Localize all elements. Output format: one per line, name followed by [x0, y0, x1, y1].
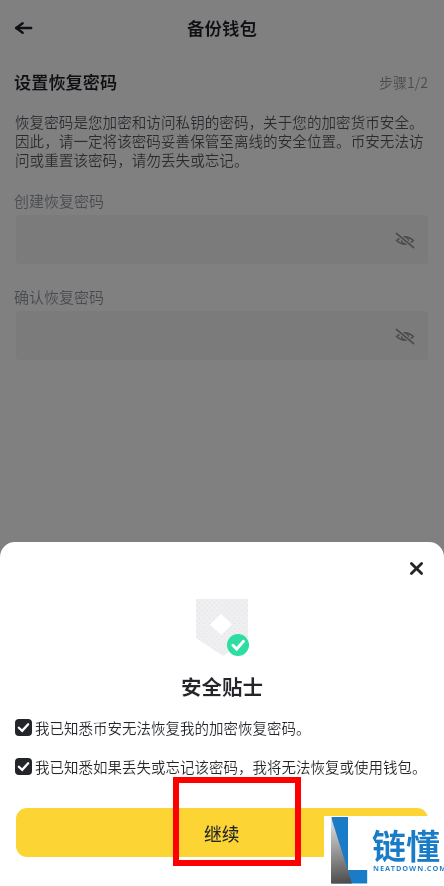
button[interactable]: 继续	[16, 808, 428, 857]
staticText: 设置恢复密码	[14, 69, 118, 94]
staticText: 继续	[204, 820, 240, 846]
button[interactable]: Close	[394, 546, 438, 590]
staticText: 确认恢复密码	[14, 286, 105, 308]
staticText: NEATDOWN.COM	[373, 863, 444, 873]
button[interactable]: 我已知悉币安无法恢复我的加密恢复密码。	[15, 717, 429, 738]
staticText: 恢复密码是您加密和访问私钥的密码，关于您的加密货币安全。因此，请一定将该密码妥善…	[15, 111, 431, 170]
button[interactable]: Show password	[16, 215, 428, 264]
staticText: 备份钱包	[187, 15, 257, 40]
button[interactable]: Show password	[393, 228, 417, 252]
staticText: 链懂	[372, 820, 440, 869]
staticText: 我已知悉币安无法恢复我的加密恢复密码。	[35, 717, 311, 738]
staticText: 安全贴士	[181, 671, 263, 701]
staticText: 创建恢复密码	[14, 190, 105, 212]
staticText: 我已知悉如果丢失或忘记该密码，我将无法恢复或使用钱包。	[35, 756, 427, 777]
button[interactable]: Show password	[16, 311, 428, 360]
button[interactable]: 我已知悉如果丢失或忘记该密码，我将无法恢复或使用钱包。	[15, 756, 429, 777]
button[interactable]: Back	[2, 7, 44, 49]
button[interactable]: Show password	[393, 324, 417, 348]
staticText: 步骤1/2	[379, 72, 429, 92]
